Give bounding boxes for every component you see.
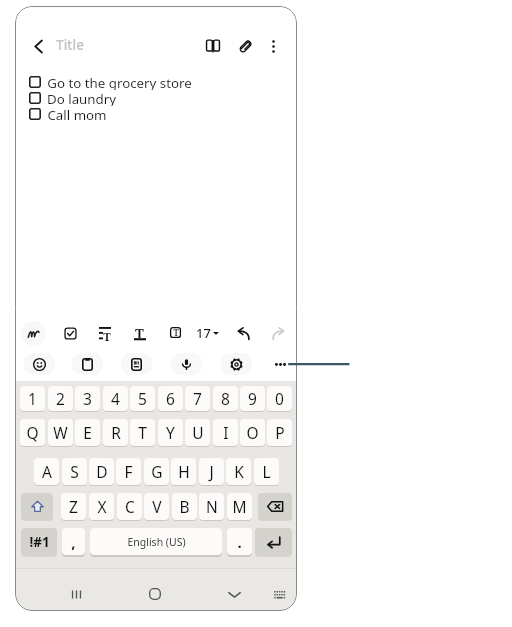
- button[interactable]: 1: [20, 386, 45, 411]
- button[interactable]: D: [89, 458, 114, 485]
- button[interactable]: G: [144, 458, 169, 485]
- button[interactable]: 4: [103, 386, 128, 411]
- button[interactable]: Recent apps: [61, 579, 91, 609]
- staticText: C: [125, 496, 135, 517]
- button[interactable]: More options: [262, 33, 284, 59]
- button[interactable]: 9: [240, 386, 265, 411]
- button[interactable]: 5: [130, 386, 155, 411]
- button[interactable]: Stickers: [121, 353, 152, 375]
- button[interactable]: Do laundry: [29, 90, 285, 106]
- button[interactable]: J: [199, 458, 224, 485]
- staticText: M: [232, 496, 247, 517]
- button[interactable]: X: [89, 493, 114, 520]
- button[interactable]: K: [226, 458, 251, 485]
- button[interactable]: .: [227, 528, 252, 555]
- button[interactable]: W: [48, 419, 73, 446]
- staticText: V: [152, 496, 162, 517]
- staticText: K: [234, 461, 244, 482]
- button[interactable]: 7: [185, 386, 210, 411]
- staticText: .: [237, 532, 242, 552]
- button[interactable]: Q: [20, 419, 45, 446]
- staticText: 3: [83, 388, 92, 409]
- button[interactable]: Home: [140, 579, 170, 609]
- button[interactable]: Title: [56, 36, 84, 54]
- button[interactable]: O: [240, 419, 265, 446]
- staticText: F: [124, 461, 133, 482]
- button[interactable]: Call mom: [29, 106, 285, 122]
- button[interactable]: U: [185, 419, 210, 446]
- staticText: W: [53, 422, 68, 443]
- button[interactable]: M: [227, 493, 252, 520]
- button[interactable]: T: [130, 419, 155, 446]
- staticText: Do laundry: [47, 90, 116, 106]
- button[interactable]: H: [171, 458, 196, 485]
- button[interactable]: L: [254, 458, 279, 485]
- button[interactable]: Settings: [221, 353, 252, 375]
- staticText: D: [96, 461, 108, 482]
- staticText: 8: [221, 388, 230, 409]
- button[interactable]: Text box: [163, 321, 187, 345]
- button[interactable]: ,: [62, 528, 85, 555]
- button[interactable]: C: [117, 493, 142, 520]
- staticText: Title: [56, 36, 84, 54]
- button[interactable]: Reading mode: [200, 33, 226, 59]
- staticText: Go to the grocery store: [47, 74, 192, 90]
- button[interactable]: Emoji: [24, 353, 55, 375]
- button[interactable]: A: [34, 458, 59, 485]
- staticText: 6: [166, 388, 175, 409]
- button[interactable]: Paragraph style: [93, 321, 117, 345]
- button[interactable]: Clipboard: [72, 353, 103, 375]
- button[interactable]: 6: [158, 386, 183, 411]
- staticText: H: [178, 461, 190, 482]
- button[interactable]: Font size: [190, 322, 224, 344]
- button[interactable]: Go to the grocery store: [29, 74, 285, 90]
- staticText: T: [173, 327, 179, 338]
- button[interactable]: More keyboard options: [269, 353, 291, 375]
- button[interactable]: Shift: [21, 493, 53, 520]
- button[interactable]: S: [62, 458, 87, 485]
- button[interactable]: Redo: [266, 321, 290, 345]
- button[interactable]: Backspace: [258, 493, 292, 520]
- button[interactable]: Voice input: [171, 353, 202, 375]
- staticText: Y: [166, 422, 175, 443]
- staticText: Q: [26, 422, 39, 443]
- button[interactable]: N: [199, 493, 224, 520]
- button[interactable]: Text style: [128, 321, 152, 345]
- button[interactable]: P: [267, 419, 292, 446]
- button[interactable]: Change keyboard: [264, 579, 294, 609]
- staticText: T: [135, 325, 144, 338]
- staticText: X: [97, 496, 107, 517]
- button[interactable]: Attach file: [232, 33, 258, 59]
- staticText: J: [209, 461, 214, 482]
- staticText: 9: [248, 388, 257, 409]
- button[interactable]: E: [75, 419, 100, 446]
- staticText: B: [179, 496, 190, 517]
- button[interactable]: !#1: [21, 528, 57, 555]
- button[interactable]: 3: [75, 386, 100, 411]
- button[interactable]: English (US): [90, 528, 222, 555]
- button[interactable]: Undo: [231, 321, 255, 345]
- button[interactable]: 0: [267, 386, 292, 411]
- staticText: 7: [193, 388, 202, 409]
- button[interactable]: Z: [61, 493, 86, 520]
- staticText: T: [138, 422, 147, 443]
- button[interactable]: Enter: [255, 528, 292, 555]
- staticText: 17: [196, 324, 211, 342]
- staticText: I: [223, 422, 229, 443]
- button[interactable]: 8: [213, 386, 238, 411]
- button[interactable]: Y: [158, 419, 183, 446]
- staticText: E: [83, 422, 92, 443]
- button[interactable]: Hide keyboard: [219, 579, 249, 609]
- staticText: A: [42, 461, 52, 482]
- button[interactable]: 2: [48, 386, 73, 411]
- button[interactable]: F: [116, 458, 141, 485]
- button[interactable]: Checklist: [58, 321, 82, 345]
- button[interactable]: V: [144, 493, 169, 520]
- button[interactable]: Back: [25, 33, 51, 59]
- staticText: English (US): [127, 535, 186, 549]
- button[interactable]: R: [103, 419, 128, 446]
- button[interactable]: B: [172, 493, 197, 520]
- button[interactable]: Handwriting: [21, 321, 46, 346]
- button[interactable]: I: [213, 419, 238, 446]
- staticText: L: [262, 461, 271, 482]
